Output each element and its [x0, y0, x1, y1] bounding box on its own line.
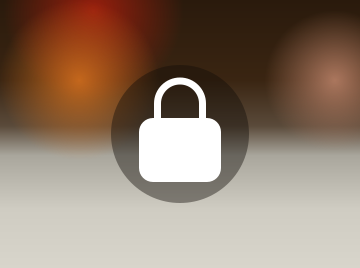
button[interactable]: Locked	[111, 65, 249, 203]
